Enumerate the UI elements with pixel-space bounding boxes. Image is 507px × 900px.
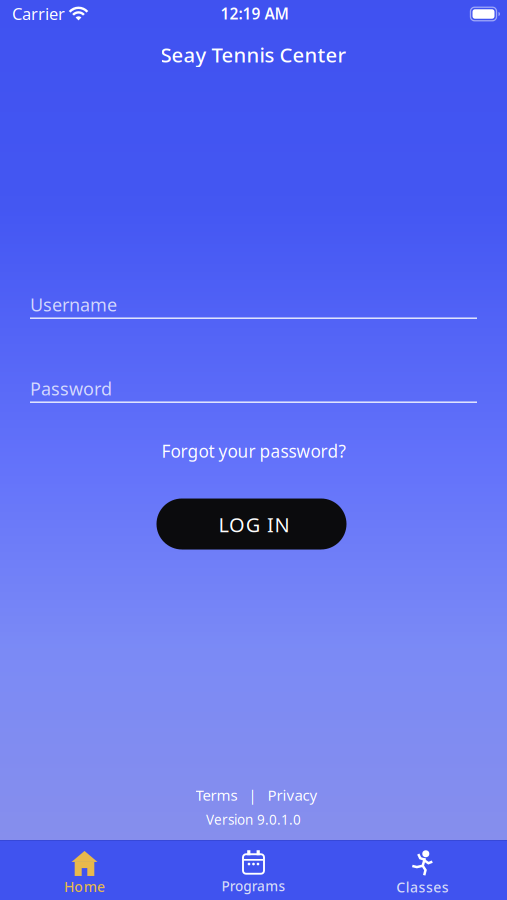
staticText: | bbox=[248, 785, 256, 805]
button[interactable]: Home bbox=[19, 843, 149, 900]
button[interactable]: Programs bbox=[188, 843, 318, 900]
staticText: Password bbox=[30, 376, 112, 401]
staticText: Classes bbox=[396, 877, 449, 897]
button[interactable]: Username bbox=[30, 296, 477, 324]
staticText: LOG IN bbox=[218, 511, 289, 538]
button[interactable]: Forgot your password? bbox=[161, 439, 345, 463]
staticText: Programs bbox=[221, 877, 286, 895]
staticText: 12:19 AM bbox=[220, 3, 288, 24]
staticText: Seay Tennis Center bbox=[160, 41, 346, 68]
button[interactable]: LOG IN bbox=[156, 498, 346, 549]
button[interactable]: Classes bbox=[357, 843, 487, 900]
button[interactable]: Privacy bbox=[267, 785, 317, 805]
staticText: Carrier bbox=[12, 2, 65, 25]
staticText: Privacy bbox=[267, 785, 317, 805]
button[interactable]: Password bbox=[30, 380, 477, 408]
staticText: Version 9.0.1.0 bbox=[206, 810, 301, 829]
button[interactable]: Terms bbox=[195, 785, 237, 805]
staticText: Terms bbox=[195, 785, 237, 805]
staticText: Username bbox=[30, 292, 117, 317]
staticText: Home bbox=[64, 877, 105, 896]
staticText: Forgot your password? bbox=[161, 439, 345, 463]
